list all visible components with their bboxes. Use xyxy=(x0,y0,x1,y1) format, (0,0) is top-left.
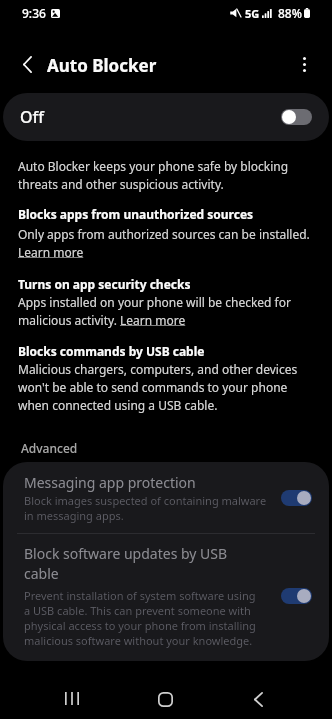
button[interactable]: Navigate up xyxy=(9,46,45,82)
button[interactable]: Recent apps xyxy=(46,674,98,719)
staticText: Prevent installation of system software … xyxy=(24,588,256,648)
staticText: Auto Blocker xyxy=(47,54,157,77)
staticText: Blocks apps from unauthorized sources xyxy=(18,206,254,222)
staticText: Advanced xyxy=(21,440,78,456)
staticText: Block software updates by USB cable xyxy=(24,544,256,584)
button[interactable]: Back xyxy=(232,675,284,719)
staticText: 9:36 xyxy=(22,5,46,21)
button[interactable]: Home xyxy=(139,675,191,719)
staticText: Off xyxy=(20,106,44,128)
staticText: Auto Blocker keeps your phone safe by bl… xyxy=(18,158,316,192)
button[interactable]: Messaging app protection xyxy=(3,462,329,533)
staticText: Block images suspected of containing mal… xyxy=(24,493,272,523)
staticText: Malicious chargers, computers, and other… xyxy=(18,361,316,413)
staticText: Apps installed on your phone will be che… xyxy=(18,294,316,328)
button[interactable]: Block software updates by USB cable xyxy=(3,534,329,661)
staticText: 5G xyxy=(245,6,260,21)
button[interactable]: Off xyxy=(3,93,329,141)
staticText: Messaging app protection xyxy=(24,473,196,492)
staticText: Only apps from authorized sources can be… xyxy=(18,226,316,260)
staticText: Turns on app security checks xyxy=(18,276,191,292)
staticText: Blocks commands by USB cable xyxy=(18,343,205,359)
staticText: 88% xyxy=(278,5,302,21)
button[interactable]: More options xyxy=(286,46,322,82)
